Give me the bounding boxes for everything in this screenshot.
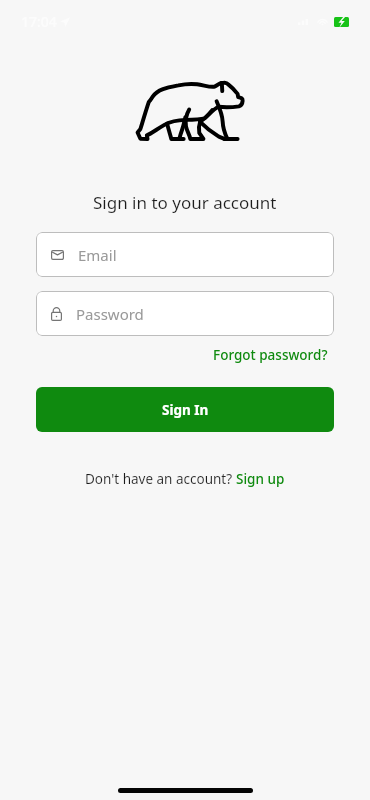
staticText: Don't have an account? [85, 470, 236, 488]
staticText: Email [78, 245, 117, 265]
staticText: Sign in to your account [93, 191, 277, 214]
button[interactable]: Sign up [236, 470, 285, 488]
button[interactable]: Forgot password? [209, 342, 332, 368]
button[interactable]: Email [36, 232, 334, 277]
button[interactable]: Sign In [36, 387, 334, 432]
staticText: Sign In [162, 401, 209, 419]
staticText: Sign up [236, 470, 285, 488]
button[interactable]: Password [36, 291, 334, 336]
staticText: Forgot password? [213, 346, 328, 364]
staticText: Password [76, 304, 144, 324]
